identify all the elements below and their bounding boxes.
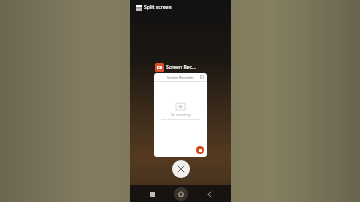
button[interactable]: Close bbox=[172, 160, 190, 178]
staticText: Split screen bbox=[144, 4, 172, 11]
button[interactable]: Back bbox=[202, 187, 216, 201]
button[interactable]: Record bbox=[196, 146, 204, 154]
button[interactable]: Home bbox=[174, 187, 188, 201]
staticText: No recordings bbox=[171, 113, 191, 117]
button[interactable]: Recents bbox=[145, 187, 159, 201]
staticText: Screen Rec… bbox=[166, 64, 196, 71]
staticText: Screen Recorder bbox=[167, 75, 194, 80]
staticText: Tap the button to start recording bbox=[161, 117, 200, 120]
button[interactable]: Split screen bbox=[135, 3, 173, 12]
button[interactable]: Screen Recorder bbox=[154, 73, 207, 157]
button[interactable]: Screen Rec… bbox=[154, 62, 207, 73]
